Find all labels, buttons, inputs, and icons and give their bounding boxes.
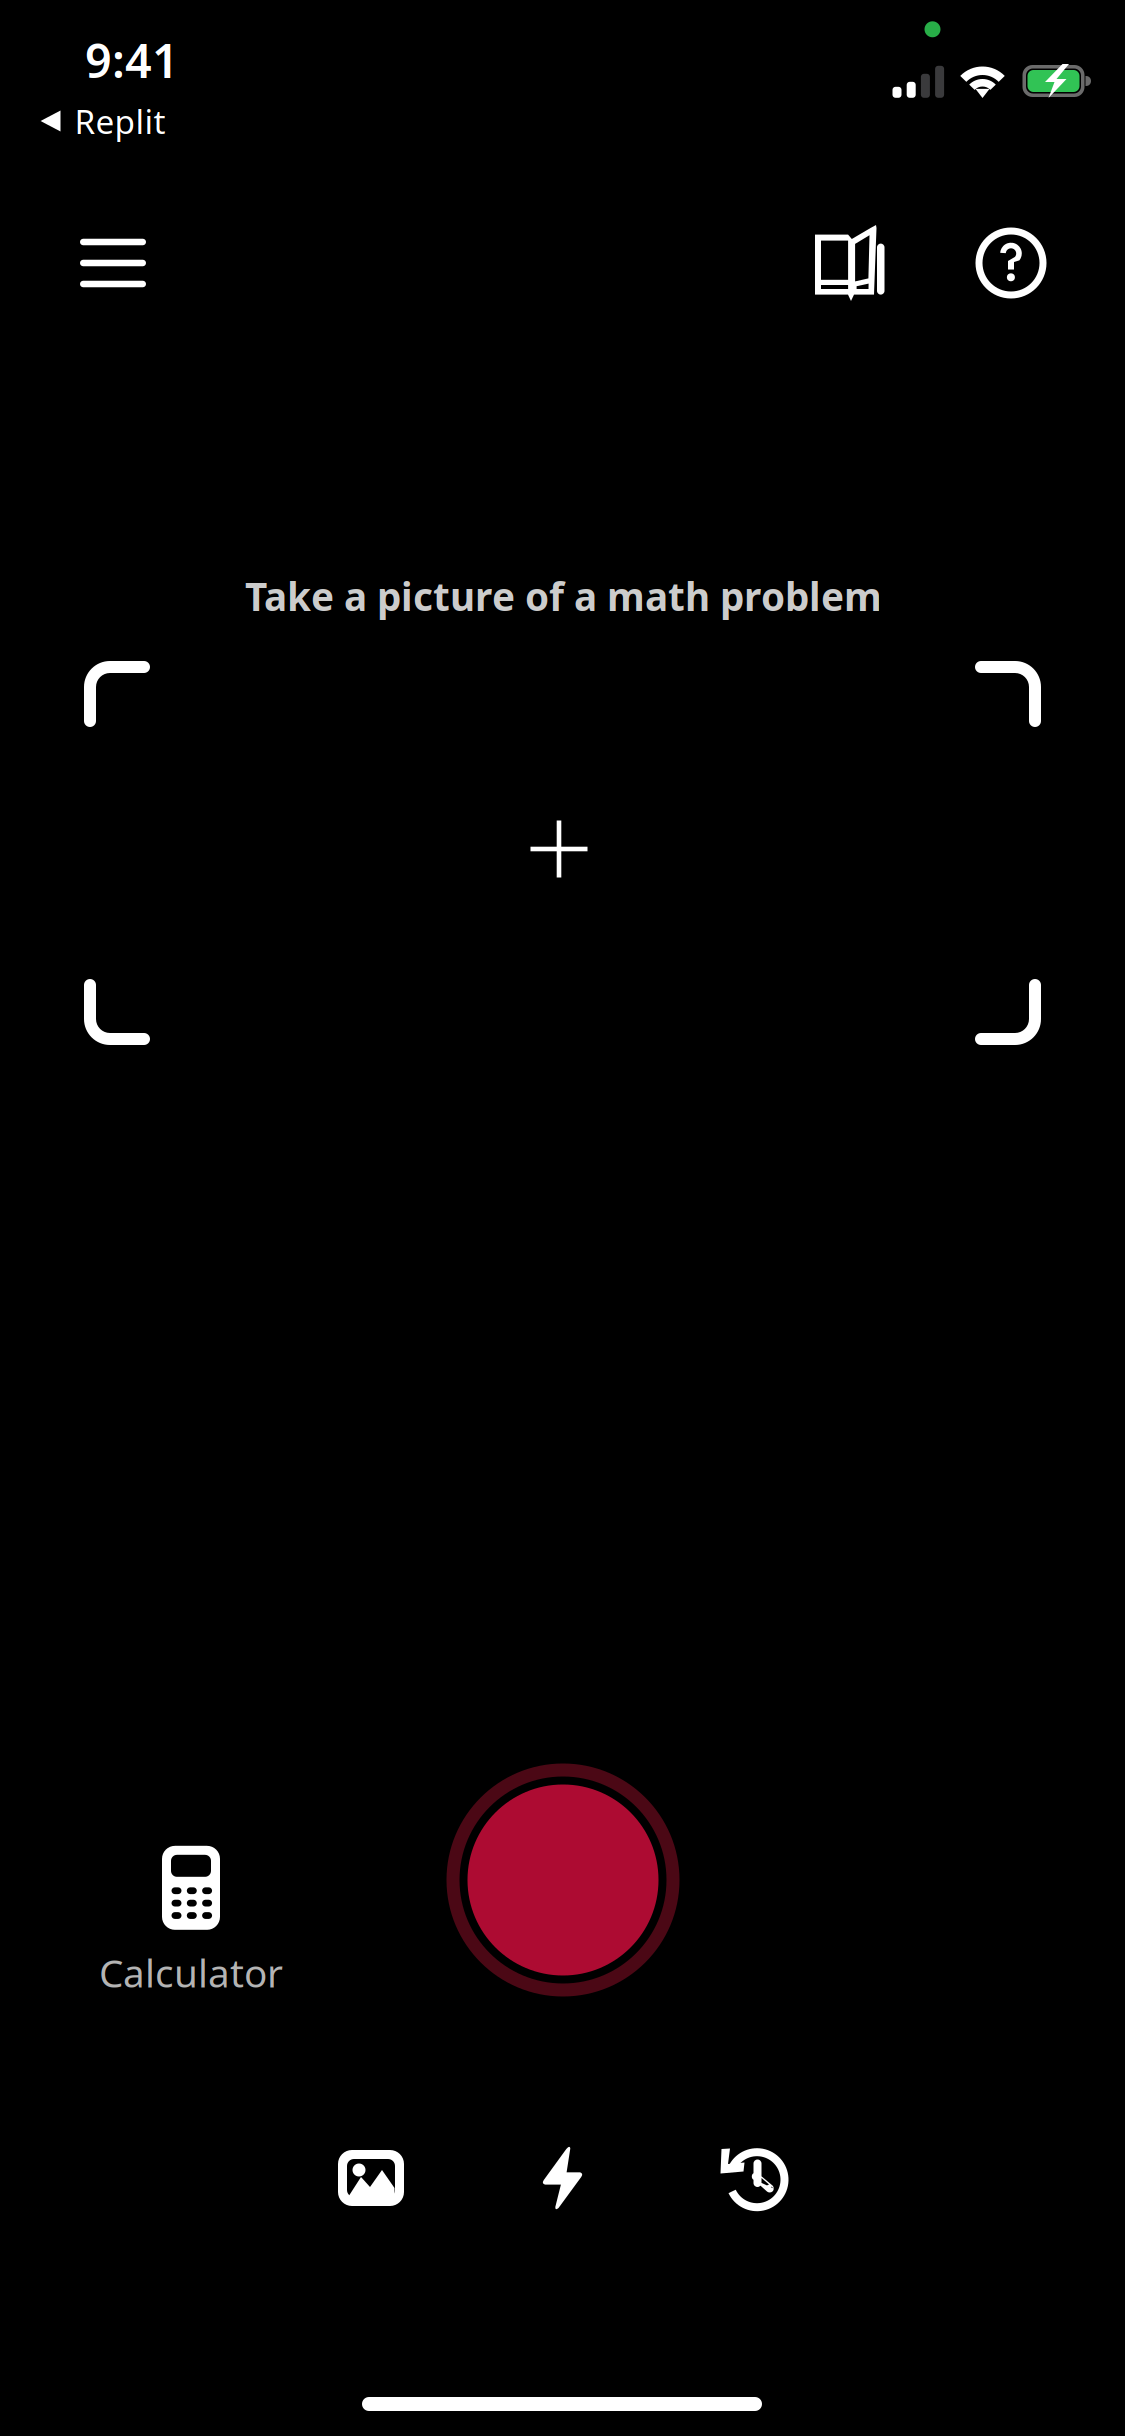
button[interactable]: Flash: [510, 2113, 616, 2243]
button[interactable]: Learn: [793, 203, 905, 323]
staticText: Replit: [74, 99, 165, 143]
button[interactable]: Back to Replit: [40, 91, 165, 151]
button[interactable]: Scan math problem: [446, 1763, 679, 1996]
button[interactable]: History: [689, 2114, 818, 2242]
button[interactable]: Calculator: [83, 1834, 299, 2010]
button[interactable]: Photo library: [308, 2120, 434, 2236]
button[interactable]: Menu: [54, 213, 172, 313]
staticText: 9:41: [85, 29, 179, 91]
staticText: Take a picture of a math problem: [245, 570, 882, 622]
staticText: Calculator: [99, 1947, 283, 1998]
button[interactable]: Help: [955, 207, 1066, 318]
